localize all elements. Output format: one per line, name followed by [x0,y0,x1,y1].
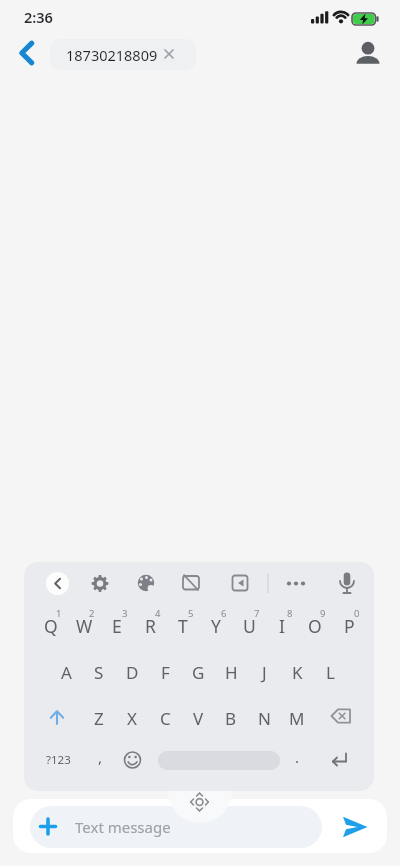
staticText: 0 [354,607,360,620]
button[interactable]: G [180,652,216,692]
staticText: Z [94,707,104,730]
button[interactable]: A [48,652,84,692]
button[interactable]: T [165,606,201,646]
staticText: K [292,661,303,684]
button[interactable]: X [114,698,150,738]
staticText: N [258,707,271,730]
button[interactable]: L [312,652,348,692]
staticText: 2 [89,607,95,620]
button[interactable]: K [279,652,315,692]
button[interactable] [324,697,358,737]
staticText: 1 [56,607,62,620]
staticText: . [295,747,300,767]
button[interactable]: I [264,606,300,646]
staticText: W [76,614,93,638]
staticText: 8 [287,607,293,620]
staticText: 18730218809 [66,45,158,65]
staticText: D [126,661,139,684]
staticText: 4 [155,607,161,620]
button[interactable] [168,759,232,823]
staticText: 5 [188,607,194,620]
button[interactable] [338,812,372,846]
staticText: I [279,614,285,638]
button[interactable]: ?123 [40,740,76,780]
button[interactable]: M [279,698,315,738]
staticText: L [326,661,335,684]
staticText: E [112,614,122,638]
button[interactable] [117,742,148,778]
button[interactable] [134,571,158,595]
button[interactable]: Text message [30,806,322,848]
staticText: C [160,707,171,730]
staticText: 7 [254,607,260,620]
button[interactable] [228,571,252,595]
staticText: Text message [75,817,171,837]
button[interactable]: B [213,698,249,738]
button[interactable] [88,571,112,595]
button[interactable] [41,697,73,737]
staticText: P [344,614,355,638]
staticText: M [289,707,305,730]
button[interactable]: . [279,737,315,777]
button[interactable] [284,571,308,595]
button[interactable]: W [66,606,102,646]
staticText: A [61,661,72,684]
button[interactable]: H [213,652,249,692]
button[interactable]: J [246,652,282,692]
button[interactable]: C [147,698,183,738]
button[interactable]: E [99,606,135,646]
staticText: B [225,707,237,730]
button[interactable]: N [246,698,282,738]
button[interactable] [46,572,69,595]
staticText: J [262,661,267,684]
staticText: Q [44,614,58,638]
staticText: O [308,614,322,638]
staticText: Y [211,614,221,638]
button[interactable]: Q [33,606,69,646]
staticText: 6 [221,607,227,620]
button[interactable] [324,742,356,778]
button[interactable]: V [180,698,216,738]
staticText: , [98,747,103,767]
button[interactable]: Z [81,698,117,738]
staticText: G [192,661,205,684]
button[interactable]: U [231,606,267,646]
staticText: V [193,707,204,730]
button[interactable]: P [331,606,367,646]
staticText: 2:36 [24,7,53,27]
staticText: T [178,614,188,638]
staticText: X [127,707,137,730]
button[interactable]: S [81,652,117,692]
button[interactable] [354,40,382,68]
button[interactable]: D [114,652,150,692]
staticText: F [161,661,170,684]
button[interactable] [13,40,41,68]
staticText: H [225,661,238,684]
button[interactable]: F [147,652,183,692]
staticText: ?123 [46,752,71,768]
button[interactable]: , [82,737,118,777]
button[interactable]: R [132,606,168,646]
staticText: S [94,661,104,684]
staticText: R [145,614,156,638]
staticText: 9 [320,607,326,620]
button[interactable] [179,571,203,595]
button[interactable] [335,571,359,595]
staticText: 3 [122,607,128,620]
button[interactable]: O [297,606,333,646]
button[interactable]: Y [198,606,234,646]
button[interactable]: 18730218809 [50,39,196,70]
staticText: U [243,614,256,638]
